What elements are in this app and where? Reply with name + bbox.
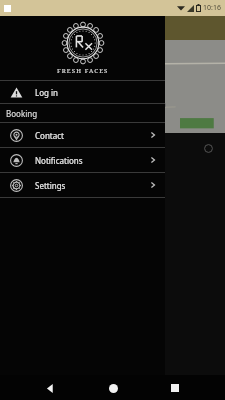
button[interactable]: Contact (0, 123, 165, 147)
button[interactable]: Notifications (0, 148, 165, 172)
staticText: Settings (35, 180, 66, 191)
staticText: Contact (35, 130, 64, 141)
staticText: Notifications (35, 155, 83, 166)
staticText: Booking (6, 108, 38, 119)
button[interactable]: Settings (0, 173, 165, 197)
button[interactable]: Back (38, 376, 62, 400)
staticText: Log in (35, 87, 59, 98)
staticText: 10:16 (203, 3, 221, 13)
staticText: FRESH FACES (57, 67, 109, 75)
staticText: Details (6, 145, 23, 152)
button[interactable]: Recent apps (163, 376, 187, 400)
button[interactable]: Log in (0, 81, 165, 103)
button[interactable]: Home (101, 376, 125, 400)
